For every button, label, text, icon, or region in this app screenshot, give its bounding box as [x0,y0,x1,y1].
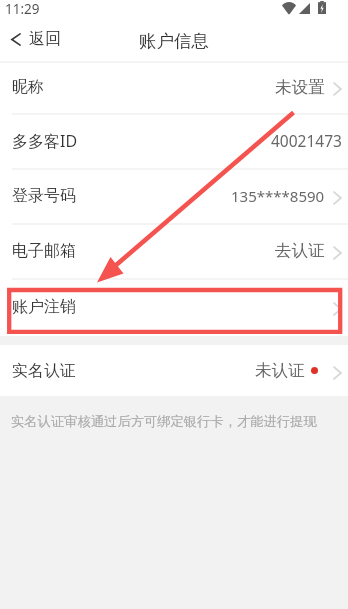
staticText: 昵称 [12,77,44,97]
staticText: 账户信息 [139,30,209,52]
button[interactable]: 实名认证 [0,345,348,396]
button[interactable]: 昵称 [0,61,348,113]
staticText: 未认证 [255,360,305,381]
staticText: 135****8590 [231,186,325,206]
staticText: 实名认证审核通过后方可绑定银行卡，才能进行提现 [11,413,317,430]
staticText: 多多客ID [12,130,78,152]
button[interactable]: 返回 [0,21,71,57]
staticText: 实名认证 [12,361,76,381]
button[interactable]: 电子邮箱 [0,223,348,278]
staticText: 登录号码 [12,186,76,206]
staticText: 账户注销 [12,297,76,317]
staticText: 40021473 [271,130,342,151]
staticText: 返回 [29,29,61,49]
staticText: 未设置 [275,77,325,98]
staticText: 11:29 [5,0,40,17]
staticText: 去认证 [275,240,325,261]
button[interactable]: 账户注销 [0,278,348,336]
staticText: 电子邮箱 [12,241,76,261]
button[interactable]: 登录号码 [0,168,348,223]
button[interactable]: 多多客ID [0,113,348,168]
